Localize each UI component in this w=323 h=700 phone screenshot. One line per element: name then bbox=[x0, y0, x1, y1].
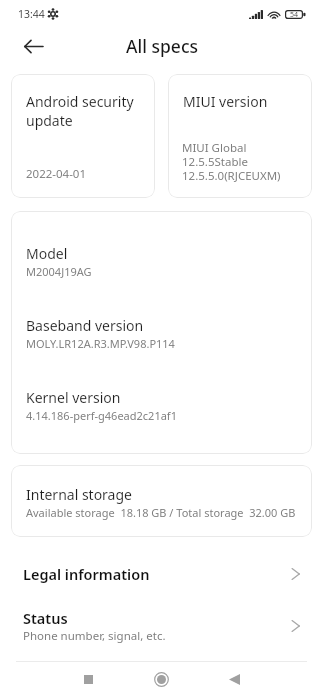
button[interactable]: Recents bbox=[69, 660, 107, 698]
staticText: Android security update bbox=[26, 92, 134, 130]
button[interactable]: Android security update bbox=[11, 74, 155, 198]
staticText: 4.14.186-perf-g46ead2c21af1 bbox=[26, 408, 177, 423]
staticText: Baseband version bbox=[26, 316, 144, 335]
staticText: Kernel version bbox=[26, 388, 121, 407]
staticText: MIUI Global 12.5.5Stable 12.5.5.0(RJCEUX… bbox=[182, 140, 281, 183]
staticText: M2004J19AG bbox=[26, 264, 92, 279]
button[interactable]: MIUI version bbox=[168, 74, 312, 198]
staticText: Internal storage bbox=[26, 485, 132, 504]
button[interactable]: Legal information bbox=[0, 550, 323, 598]
staticText: Status bbox=[23, 608, 68, 628]
button[interactable]: Back bbox=[215, 660, 253, 698]
staticText: Available storage 18.18 GB / Total stora… bbox=[26, 505, 296, 520]
staticText: MIUI version bbox=[183, 92, 268, 111]
staticText: Model bbox=[26, 244, 68, 263]
staticText: MOLY.LR12A.R3.MP.V98.P114 bbox=[26, 336, 175, 351]
button[interactable]: Status bbox=[0, 598, 323, 654]
button[interactable]: Model bbox=[11, 211, 312, 454]
staticText: 54 bbox=[290, 10, 299, 19]
staticText: All specs bbox=[126, 34, 198, 58]
button[interactable]: Internal storage bbox=[11, 465, 312, 537]
staticText: 13:44 bbox=[18, 7, 45, 21]
button[interactable]: Back bbox=[17, 30, 49, 62]
staticText: Legal information bbox=[23, 564, 150, 584]
staticText: Phone number, signal, etc. bbox=[23, 628, 166, 644]
staticText: 2022-04-01 bbox=[26, 166, 87, 182]
button[interactable]: Home bbox=[142, 660, 180, 698]
